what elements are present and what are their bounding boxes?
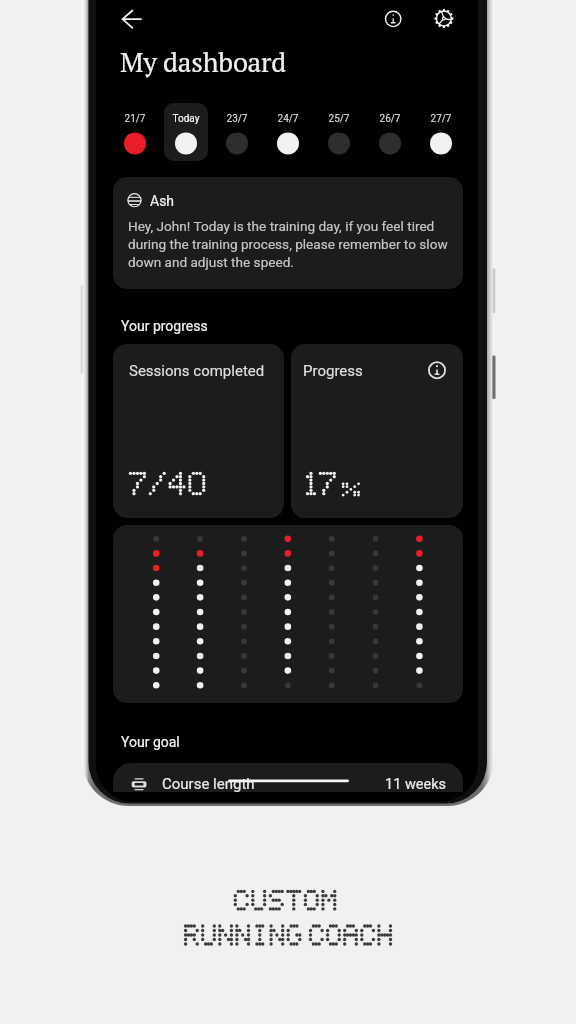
button[interactable]: Sessions completed bbox=[113, 344, 284, 518]
button[interactable]: 24/7 bbox=[266, 103, 310, 161]
staticText: 24/7 bbox=[266, 113, 310, 127]
button[interactable]: 27/7 bbox=[419, 103, 463, 161]
button[interactable]: Progress bbox=[291, 344, 463, 518]
button[interactable]: Today bbox=[164, 103, 208, 161]
button[interactable]: Ash bbox=[113, 177, 463, 289]
staticText: Ash bbox=[150, 193, 175, 209]
staticText: My dashboard bbox=[120, 44, 286, 80]
button[interactable]: Course length bbox=[113, 763, 463, 792]
button[interactable]: 21/7 bbox=[113, 103, 157, 161]
button[interactable]: 25/7 bbox=[317, 103, 361, 161]
staticText: 27/7 bbox=[419, 113, 463, 127]
button[interactable]: Settings bbox=[426, 1, 462, 37]
button[interactable]: 23/7 bbox=[215, 103, 259, 161]
staticText: Your progress bbox=[121, 318, 208, 334]
button[interactable] bbox=[113, 525, 463, 703]
staticText: Course length bbox=[162, 775, 255, 792]
staticText: Today bbox=[164, 113, 208, 127]
button[interactable]: Back bbox=[113, 1, 149, 37]
staticText: 23/7 bbox=[215, 113, 259, 127]
staticText: Your goal bbox=[121, 734, 180, 750]
staticText: Sessions completed bbox=[129, 362, 265, 380]
staticText: Hey, John! Today is the training day, if… bbox=[128, 218, 458, 282]
staticText: 21/7 bbox=[113, 113, 157, 127]
button[interactable]: Information bbox=[375, 1, 411, 37]
staticText: Progress bbox=[303, 362, 363, 380]
staticText: 26/7 bbox=[368, 113, 412, 127]
button[interactable]: 26/7 bbox=[368, 103, 412, 161]
staticText: 11 weeks bbox=[385, 776, 447, 792]
staticText: 25/7 bbox=[317, 113, 361, 127]
